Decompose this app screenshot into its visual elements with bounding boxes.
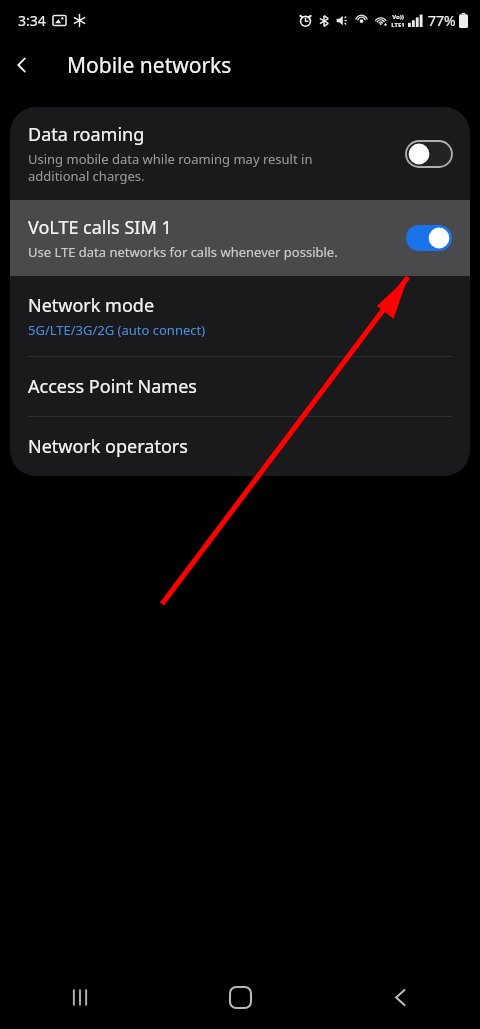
button[interactable]: Back <box>0 43 44 87</box>
button[interactable]: Back <box>320 965 480 1029</box>
staticText: Use LTE data networks for calls whenever… <box>28 243 338 261</box>
button[interactable]: Recents <box>0 965 160 1029</box>
staticText: Access Point Names <box>28 374 197 399</box>
staticText: Vo)) <box>392 13 404 21</box>
staticText: 3:34 <box>18 11 46 30</box>
staticText: Mobile networks <box>67 51 232 80</box>
staticText: Network operators <box>28 434 188 459</box>
button[interactable]: On <box>406 225 452 251</box>
staticText: 5G/LTE/3G/2G (auto connect) <box>28 321 206 339</box>
button[interactable]: VoLTE calls SIM 1 <box>10 200 470 276</box>
button[interactable]: Home <box>160 965 320 1029</box>
staticText: 77% <box>428 11 456 30</box>
button[interactable]: Data roaming <box>10 107 470 200</box>
staticText: Data roaming <box>28 122 145 147</box>
button[interactable]: Off <box>406 141 452 167</box>
staticText: VoLTE calls SIM 1 <box>28 215 172 240</box>
staticText: Using mobile data while roaming may resu… <box>28 150 313 185</box>
button[interactable]: Network mode <box>10 276 470 356</box>
button[interactable]: Access Point Names <box>10 357 470 416</box>
button[interactable]: Network operators <box>10 417 470 476</box>
staticText: LTE1 <box>391 21 405 29</box>
staticText: Network mode <box>28 293 155 318</box>
